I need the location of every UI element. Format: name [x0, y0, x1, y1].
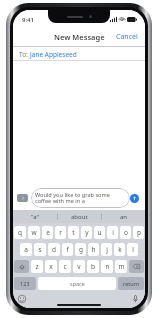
staticText: 123 — [20, 280, 30, 287]
staticText: h — [91, 245, 96, 254]
staticText: f — [66, 245, 69, 254]
button[interactable]: l — [127, 243, 138, 256]
button[interactable]: y — [81, 226, 92, 239]
staticText: b — [91, 262, 95, 271]
button[interactable]: n — [101, 260, 113, 273]
staticText: r — [59, 228, 62, 237]
button[interactable]: Send — [130, 194, 139, 203]
staticText: "a" — [31, 213, 39, 221]
staticText: s — [38, 245, 42, 254]
button[interactable]: space — [38, 277, 116, 290]
staticText: New Message — [54, 32, 105, 42]
button[interactable]: return — [118, 277, 144, 290]
button[interactable]: x — [45, 260, 57, 273]
button[interactable]: App drawer — [17, 194, 28, 202]
staticText: To: — [19, 50, 30, 59]
button[interactable]: an — [102, 210, 145, 223]
button[interactable]: about — [58, 210, 101, 223]
button[interactable]: Cancel — [109, 28, 145, 46]
staticText: about — [71, 213, 88, 221]
button[interactable]: h — [88, 243, 99, 256]
button[interactable]: e — [42, 226, 53, 239]
button[interactable]: r — [55, 226, 66, 239]
button[interactable]: To: — [13, 47, 145, 61]
staticText: o — [124, 228, 128, 237]
button[interactable]: 123 — [14, 277, 36, 290]
staticText: return — [123, 280, 140, 287]
staticText: a — [24, 245, 28, 254]
button[interactable]: "a" — [13, 210, 57, 223]
button[interactable]: c — [59, 260, 71, 273]
button[interactable]: b — [87, 260, 99, 273]
staticText: k — [118, 245, 122, 254]
staticText: q — [18, 228, 22, 237]
staticText: Cancel — [116, 32, 138, 42]
button[interactable]: i — [107, 226, 118, 239]
button[interactable]: q — [14, 226, 26, 239]
staticText: i — [112, 228, 114, 237]
staticText: an — [120, 213, 128, 221]
button[interactable]: p — [133, 226, 144, 239]
button[interactable]: t — [68, 226, 79, 239]
button[interactable]: u — [94, 226, 105, 239]
staticText: p — [137, 228, 141, 237]
button[interactable]: o — [120, 226, 131, 239]
button[interactable]: Emoji — [17, 294, 27, 304]
staticText: w — [31, 228, 37, 237]
button[interactable]: s — [34, 243, 46, 256]
button[interactable]: m — [115, 260, 127, 273]
staticText: 9:41 — [22, 16, 34, 24]
staticText: space — [70, 280, 85, 287]
staticText: l — [132, 245, 134, 254]
staticText: u — [97, 228, 102, 237]
staticText: y — [85, 228, 89, 237]
staticText: Jane Appleseed — [30, 50, 77, 59]
staticText: Would you like to grab some coffee with … — [35, 191, 118, 205]
staticText: g — [79, 245, 83, 254]
staticText: x — [49, 262, 53, 271]
button[interactable]: a — [20, 243, 32, 256]
staticText: n — [105, 262, 110, 271]
button[interactable]: f — [62, 243, 73, 256]
staticText: z — [35, 262, 39, 271]
button[interactable]: Dictation — [130, 294, 140, 304]
button[interactable]: z — [31, 260, 43, 273]
staticText: d — [52, 245, 56, 254]
button[interactable]: w — [28, 226, 40, 239]
staticText: j — [106, 245, 108, 254]
staticText: m — [118, 262, 125, 271]
button[interactable]: g — [75, 243, 86, 256]
button[interactable]: k — [114, 243, 125, 256]
staticText: e — [46, 228, 50, 237]
button[interactable]: j — [101, 243, 112, 256]
button[interactable]: Backspace — [129, 260, 144, 273]
staticText: v — [77, 262, 81, 271]
button[interactable]: d — [48, 243, 60, 256]
button[interactable]: v — [73, 260, 85, 273]
button[interactable]: Shift — [14, 260, 29, 273]
button[interactable]: Would you like to grab some coffee with … — [31, 188, 130, 208]
staticText: t — [72, 228, 75, 237]
staticText: c — [63, 262, 67, 271]
